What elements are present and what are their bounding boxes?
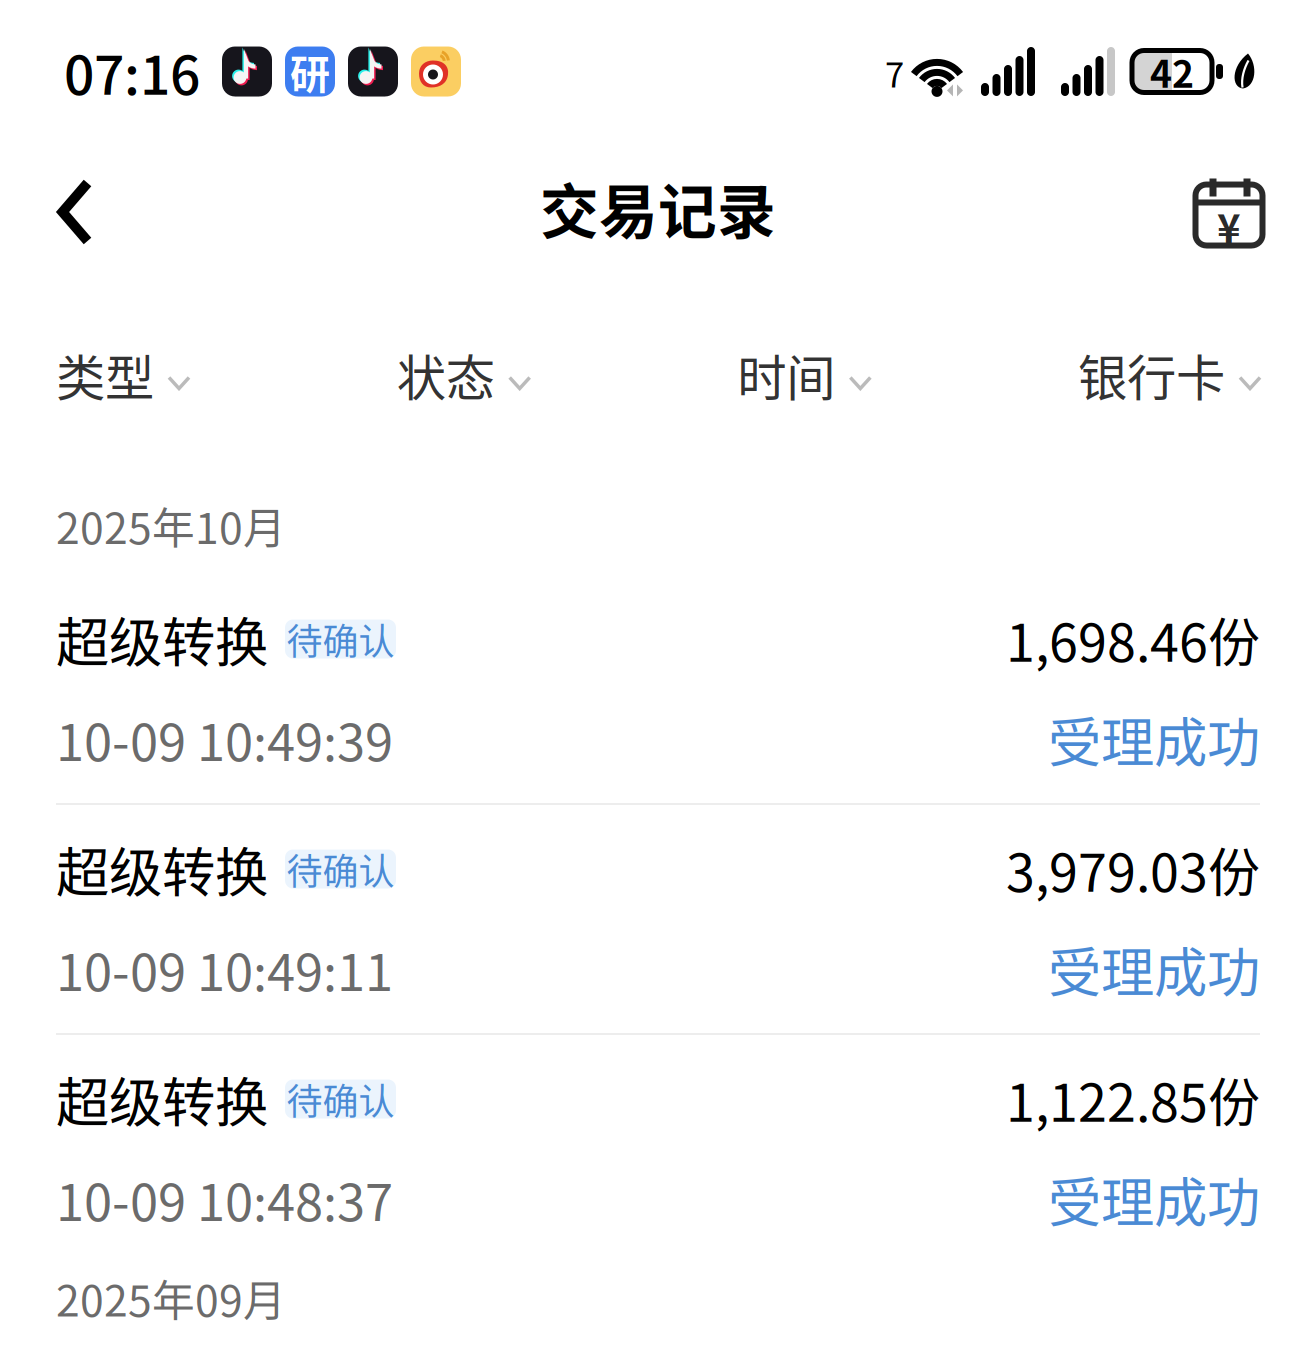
staticText: 3,979.03份 bbox=[1006, 831, 1260, 907]
button[interactable]: 超级转换 bbox=[0, 805, 1316, 1033]
staticText: 待确认 bbox=[286, 1073, 394, 1125]
staticText: 10-09 10:49:11 bbox=[56, 932, 393, 1006]
button[interactable]: 按月份筛选 bbox=[1179, 164, 1291, 260]
staticText: 超级转换 bbox=[56, 830, 268, 908]
staticText: 时间 bbox=[737, 339, 835, 410]
button[interactable]: 时间 bbox=[737, 334, 872, 414]
staticText: 受理成功 bbox=[1048, 930, 1260, 1008]
staticText: 研 bbox=[290, 42, 330, 100]
staticText: 类型 bbox=[56, 339, 154, 410]
staticText: 待确认 bbox=[286, 613, 394, 665]
button[interactable]: 超级转换 bbox=[0, 1035, 1316, 1235]
button[interactable]: 类型 bbox=[56, 334, 191, 414]
staticText: 状态 bbox=[397, 339, 495, 410]
button[interactable]: 返回 bbox=[25, 164, 125, 260]
staticText: 1,698.46份 bbox=[1006, 601, 1260, 677]
staticText: 10-09 10:48:37 bbox=[56, 1162, 393, 1236]
staticText: 2025年10月 bbox=[56, 495, 286, 556]
staticText: 07:16 bbox=[64, 33, 200, 110]
button[interactable]: 银行卡 bbox=[1078, 334, 1262, 414]
staticText: 42 bbox=[1150, 44, 1194, 99]
staticText: 超级转换 bbox=[56, 1060, 268, 1138]
staticText: 受理成功 bbox=[1048, 1160, 1260, 1238]
button[interactable]: 状态 bbox=[397, 334, 532, 414]
staticText: 超级转换 bbox=[56, 600, 268, 678]
staticText: 1,122.85份 bbox=[1006, 1061, 1260, 1137]
staticText: 银行卡 bbox=[1078, 339, 1225, 410]
button[interactable]: 超级转换 bbox=[0, 575, 1316, 803]
staticText: 10-09 10:49:39 bbox=[56, 702, 393, 776]
staticText: 交易记录 bbox=[540, 165, 776, 250]
staticText: 受理成功 bbox=[1048, 700, 1260, 778]
staticText: 待确认 bbox=[286, 843, 394, 895]
staticText: ¥ bbox=[1217, 196, 1241, 254]
staticText: 7 bbox=[885, 47, 904, 98]
staticText: 2025年09月 bbox=[56, 1267, 286, 1329]
